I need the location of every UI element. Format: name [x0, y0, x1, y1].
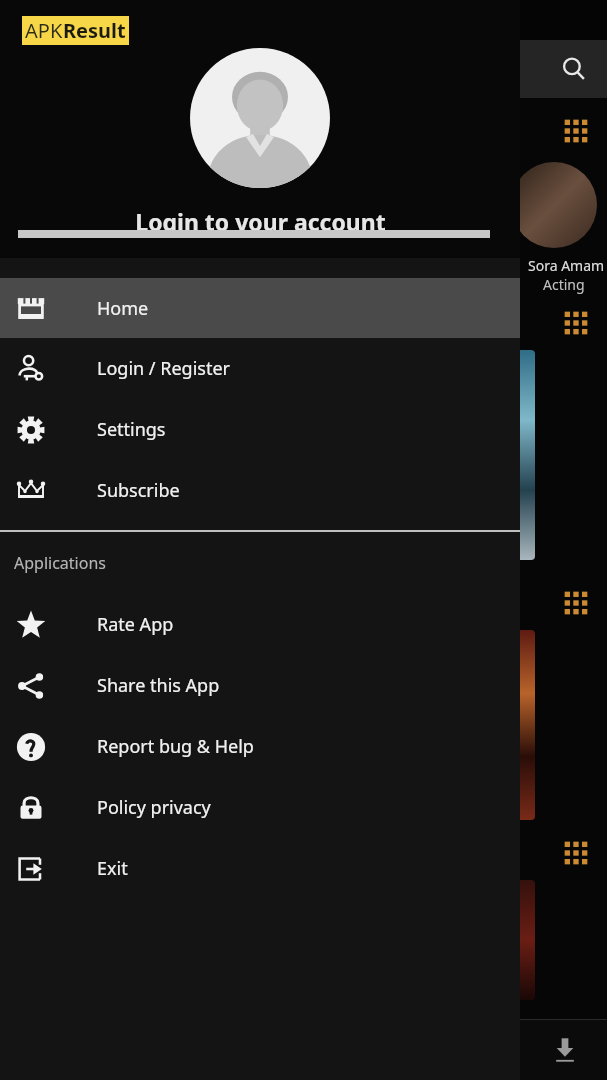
other: Subscribe — [16, 476, 46, 506]
other: Settings — [16, 415, 46, 445]
staticText: APK — [25, 17, 63, 44]
other: Report bug and Help — [16, 732, 46, 762]
staticText: Login / Register — [97, 356, 230, 381]
staticText: Applications — [14, 552, 106, 574]
other: Login / Register — [16, 354, 46, 384]
button[interactable] — [430, 630, 535, 820]
button[interactable]: Search — [553, 48, 595, 90]
button[interactable]: Settings — [0, 399, 520, 460]
button[interactable]: Report bug and Help — [0, 716, 520, 777]
staticText: Acting — [543, 275, 585, 294]
staticText: Home — [97, 296, 149, 321]
button[interactable] — [430, 880, 535, 1000]
button[interactable]: Login to your account — [0, 0, 520, 258]
staticText: Share this App — [97, 673, 220, 698]
staticText: Subscribe — [97, 478, 180, 503]
staticText: Exit — [97, 856, 128, 881]
button[interactable]: Download — [545, 1030, 585, 1070]
button[interactable] — [430, 350, 535, 560]
staticText: Sora Amam — [528, 256, 605, 275]
staticText: Report bug & Help — [97, 734, 254, 759]
button[interactable]: Policy privacy — [0, 777, 520, 838]
staticText: Result — [63, 17, 126, 44]
other: Policy privacy — [16, 793, 46, 823]
other: Rate App — [16, 610, 46, 640]
staticText: Policy privacy — [97, 795, 211, 820]
staticText: Login to your account — [135, 206, 386, 237]
button[interactable]: Login / Register — [0, 338, 520, 399]
staticText: Settings — [97, 417, 166, 442]
other: Exit — [16, 854, 46, 884]
staticText: Rate App — [97, 612, 174, 637]
button[interactable]: Rate App — [0, 594, 520, 655]
other: Home — [16, 293, 46, 323]
button[interactable]: Exit — [0, 838, 520, 899]
button[interactable]: Home — [0, 278, 520, 338]
other: Share this App — [16, 671, 46, 701]
button[interactable]: Share this App — [0, 655, 520, 716]
button[interactable]: Subscribe — [0, 460, 520, 521]
